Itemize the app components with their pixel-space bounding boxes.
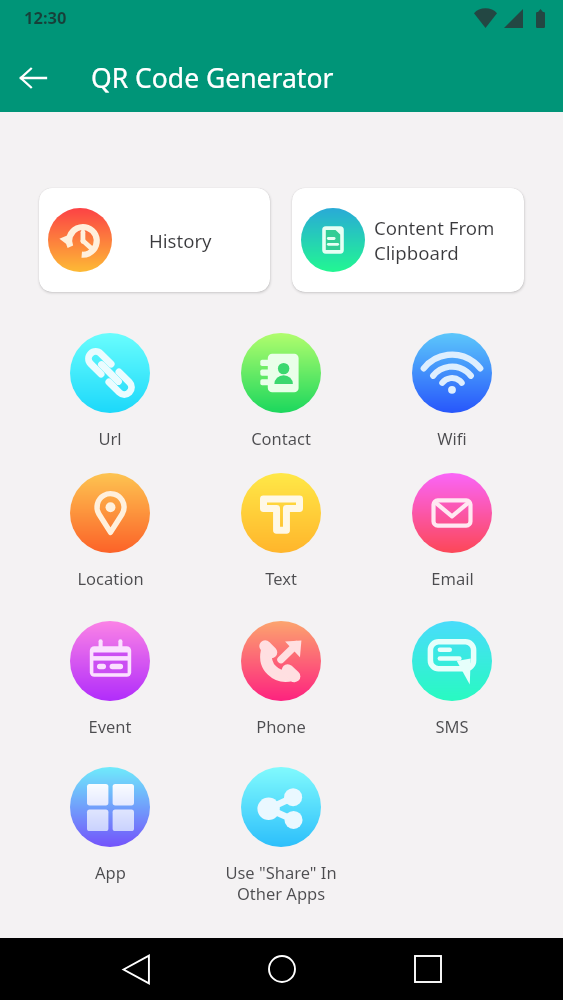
- button[interactable]: Url: [50, 333, 170, 449]
- staticText: Text: [265, 567, 297, 589]
- button[interactable]: History: [39, 188, 270, 292]
- staticText: Wifi: [437, 427, 467, 449]
- staticText: Email: [431, 567, 474, 589]
- staticText: History: [149, 228, 212, 253]
- button[interactable]: Recents: [400, 941, 456, 997]
- staticText: App: [95, 861, 126, 883]
- button[interactable]: Contact: [221, 333, 341, 449]
- button[interactable]: App: [50, 767, 170, 883]
- button[interactable]: Phone: [221, 621, 341, 737]
- staticText: Content From Clipboard: [374, 215, 495, 265]
- button[interactable]: Back: [108, 941, 164, 997]
- button[interactable]: Event: [50, 621, 170, 737]
- button[interactable]: Location: [50, 473, 170, 589]
- button[interactable]: Content From Clipboard: [292, 188, 524, 292]
- button[interactable]: Use "Share" In Other Apps: [221, 767, 341, 905]
- staticText: Location: [77, 567, 144, 589]
- button[interactable]: Email: [392, 473, 512, 589]
- staticText: Use "Share" In Other Apps: [225, 861, 337, 905]
- staticText: Phone: [256, 715, 306, 737]
- button[interactable]: Home: [254, 941, 310, 997]
- staticText: Contact: [251, 427, 311, 449]
- staticText: Url: [98, 427, 122, 449]
- staticText: Event: [88, 715, 132, 737]
- button[interactable]: Text: [221, 473, 341, 589]
- button[interactable]: Wifi: [392, 333, 512, 449]
- button[interactable]: Back: [9, 54, 57, 102]
- staticText: SMS: [435, 715, 469, 737]
- staticText: 12:30: [24, 6, 67, 28]
- button[interactable]: SMS: [392, 621, 512, 737]
- staticText: QR Code Generator: [91, 60, 334, 96]
